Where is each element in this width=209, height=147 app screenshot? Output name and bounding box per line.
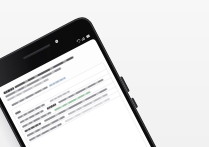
button[interactable]: Smartphone product photo showing a setti…	[0, 0, 209, 147]
